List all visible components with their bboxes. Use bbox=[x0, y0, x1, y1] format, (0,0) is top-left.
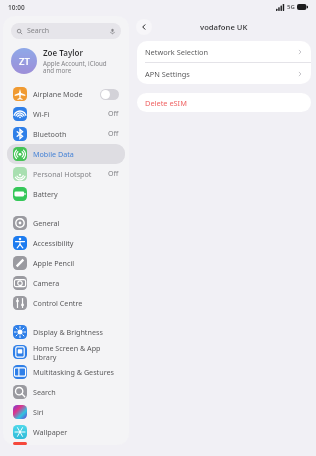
staticText: 5G bbox=[287, 3, 295, 11]
staticText: General bbox=[33, 218, 60, 228]
staticText: Control Centre bbox=[33, 298, 83, 308]
staticText: ZT bbox=[19, 55, 30, 68]
staticText: Battery bbox=[33, 189, 58, 199]
staticText: Apple Account, iCloud and more bbox=[43, 59, 107, 75]
staticText: Bluetooth bbox=[33, 129, 67, 139]
button[interactable]: APN Settings bbox=[137, 63, 311, 84]
button[interactable]: General bbox=[7, 213, 125, 233]
staticText: Multitasking & Gestures bbox=[33, 367, 114, 377]
button[interactable]: Bluetooth bbox=[7, 124, 125, 144]
button[interactable]: Search bbox=[11, 23, 121, 39]
button[interactable]: Accessibility bbox=[7, 233, 125, 253]
button[interactable]: Delete eSIM bbox=[137, 93, 311, 112]
button[interactable]: Back bbox=[136, 19, 152, 35]
button[interactable]: Notifications bbox=[7, 442, 125, 445]
staticText: Home Screen & App Library bbox=[33, 343, 119, 362]
staticText: Display & Brightness bbox=[33, 327, 103, 337]
button[interactable]: Display & Brightness bbox=[7, 322, 125, 342]
staticText: Off bbox=[108, 129, 119, 139]
button[interactable]: Home Screen & App Library bbox=[7, 342, 125, 362]
button[interactable]: Network Selection bbox=[137, 41, 311, 62]
button[interactable]: Airplane Mode bbox=[7, 84, 125, 104]
button[interactable]: Personal Hotspot bbox=[7, 164, 125, 184]
staticText: Off bbox=[108, 169, 119, 179]
staticText: vodafone UK bbox=[200, 22, 248, 32]
button[interactable]: Multitasking & Gestures bbox=[7, 362, 125, 382]
staticText: Off bbox=[108, 109, 119, 119]
staticText: Airplane Mode bbox=[33, 89, 83, 99]
staticText: Search bbox=[33, 387, 56, 397]
staticText: Apple Pencil bbox=[33, 258, 75, 268]
staticText: Wi-Fi bbox=[33, 109, 50, 119]
staticText: Camera bbox=[33, 278, 60, 288]
button[interactable]: Siri bbox=[7, 402, 125, 422]
staticText: Zoe Taylor bbox=[43, 47, 83, 58]
staticText: Accessibility bbox=[33, 238, 74, 248]
button[interactable]: Camera bbox=[7, 273, 125, 293]
staticText: Siri bbox=[33, 407, 44, 417]
staticText: Network Selection bbox=[145, 47, 209, 57]
button[interactable]: Airplane Mode toggle bbox=[100, 89, 119, 100]
button[interactable]: Mobile Data bbox=[7, 144, 125, 164]
staticText: APN Settings bbox=[145, 69, 190, 79]
staticText: Search bbox=[27, 26, 50, 36]
staticText: Wallpaper bbox=[33, 427, 68, 437]
staticText: Delete eSIM bbox=[145, 98, 187, 108]
button[interactable]: Battery bbox=[7, 184, 125, 204]
button[interactable]: ZT bbox=[11, 47, 121, 75]
button[interactable]: Apple Pencil bbox=[7, 253, 125, 273]
button[interactable]: Search bbox=[7, 382, 125, 402]
button[interactable]: Wi-Fi bbox=[7, 104, 125, 124]
button[interactable]: Wallpaper bbox=[7, 422, 125, 442]
staticText: 10:00 bbox=[8, 3, 25, 12]
staticText: Mobile Data bbox=[33, 149, 74, 159]
staticText: Personal Hotspot bbox=[33, 169, 92, 179]
button[interactable]: Control Centre bbox=[7, 293, 125, 313]
